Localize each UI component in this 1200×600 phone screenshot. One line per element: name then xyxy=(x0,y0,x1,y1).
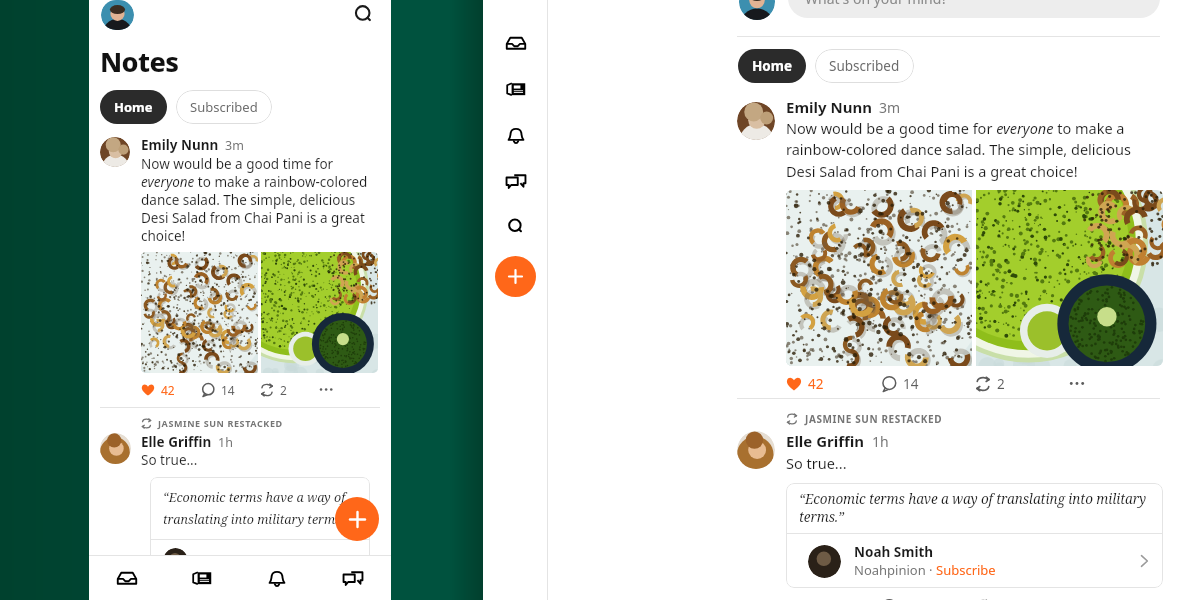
staticText: Noah Smith xyxy=(198,553,266,569)
staticText: Subscribed xyxy=(190,98,258,116)
staticText: 2 xyxy=(997,375,1005,393)
staticText: Home xyxy=(752,57,792,75)
staticText: Noahpinion · xyxy=(854,561,936,579)
button[interactable]: Home xyxy=(100,90,167,124)
staticText: “Economic terms have a way of translatin… xyxy=(799,490,1150,526)
staticText: Notes xyxy=(100,43,179,80)
button[interactable]: Reader xyxy=(493,66,539,112)
staticText: Now would be a good time for everyone to… xyxy=(786,118,1163,182)
button[interactable]: More options xyxy=(1069,374,1163,393)
staticText: 42 xyxy=(808,375,824,393)
staticText: “Economic terms have a way of translatin… xyxy=(163,489,357,528)
staticText: JASMINE SUN RESTACKED xyxy=(805,412,943,426)
button[interactable]: Chat xyxy=(315,556,391,600)
button[interactable]: Subscribed xyxy=(815,49,914,83)
button[interactable]: New note xyxy=(335,497,379,541)
staticText: So true... xyxy=(141,451,198,469)
staticText: 3m xyxy=(879,98,901,117)
staticText: JASMINE SUN RESTACKED xyxy=(158,417,283,429)
staticText: Elle Griffin xyxy=(786,431,865,451)
button[interactable]: Like xyxy=(141,382,201,398)
staticText: 42 xyxy=(161,382,175,398)
button[interactable]: Restack xyxy=(975,598,1069,600)
button[interactable]: Inbox xyxy=(89,556,164,600)
button[interactable]: Reader xyxy=(164,556,239,600)
staticText: 1h xyxy=(218,434,233,451)
button[interactable]: Profile xyxy=(101,0,134,30)
button[interactable]: Search xyxy=(493,204,539,250)
button[interactable]: Restack xyxy=(260,382,319,398)
button[interactable]: Home xyxy=(738,49,806,83)
button[interactable]: Comment xyxy=(881,375,975,393)
staticText: 14 xyxy=(221,382,235,398)
staticText: 3m xyxy=(225,137,244,154)
button[interactable]: Search xyxy=(351,2,377,28)
staticText: Subscribed xyxy=(829,57,900,75)
staticText: What's on your mind? xyxy=(805,0,948,8)
button[interactable]: What's on your mind? xyxy=(788,0,1160,18)
staticText: So true... xyxy=(786,453,847,473)
button[interactable]: Restack xyxy=(975,375,1069,393)
staticText: 2 xyxy=(280,382,287,398)
staticText: Elle Griffin xyxy=(141,433,212,451)
staticText: Now would be a good time for everyone to… xyxy=(141,155,378,245)
button[interactable]: Chat xyxy=(493,158,539,204)
button[interactable]: Inbox xyxy=(493,20,539,66)
button[interactable]: “Economic terms have a way of translatin… xyxy=(150,477,370,577)
button[interactable]: More options xyxy=(319,381,378,398)
button[interactable]: Notifications xyxy=(493,112,539,158)
staticText: 14 xyxy=(903,375,919,393)
button[interactable]: Comment xyxy=(881,598,975,600)
staticText: 1h xyxy=(872,432,889,451)
button[interactable]: Comment xyxy=(201,382,260,398)
button[interactable]: Notifications xyxy=(239,556,315,600)
staticText: Noah Smith xyxy=(854,543,934,561)
staticText: Emily Nunn xyxy=(141,136,219,154)
staticText: Emily Nunn xyxy=(786,97,872,117)
button[interactable]: Like xyxy=(786,375,881,393)
staticText: Subscribe xyxy=(936,561,996,579)
button[interactable]: “Economic terms have a way of translatin… xyxy=(786,483,1163,588)
button[interactable]: New note xyxy=(495,256,536,297)
staticText: Home xyxy=(114,98,153,116)
button[interactable]: Subscribed xyxy=(176,90,272,124)
